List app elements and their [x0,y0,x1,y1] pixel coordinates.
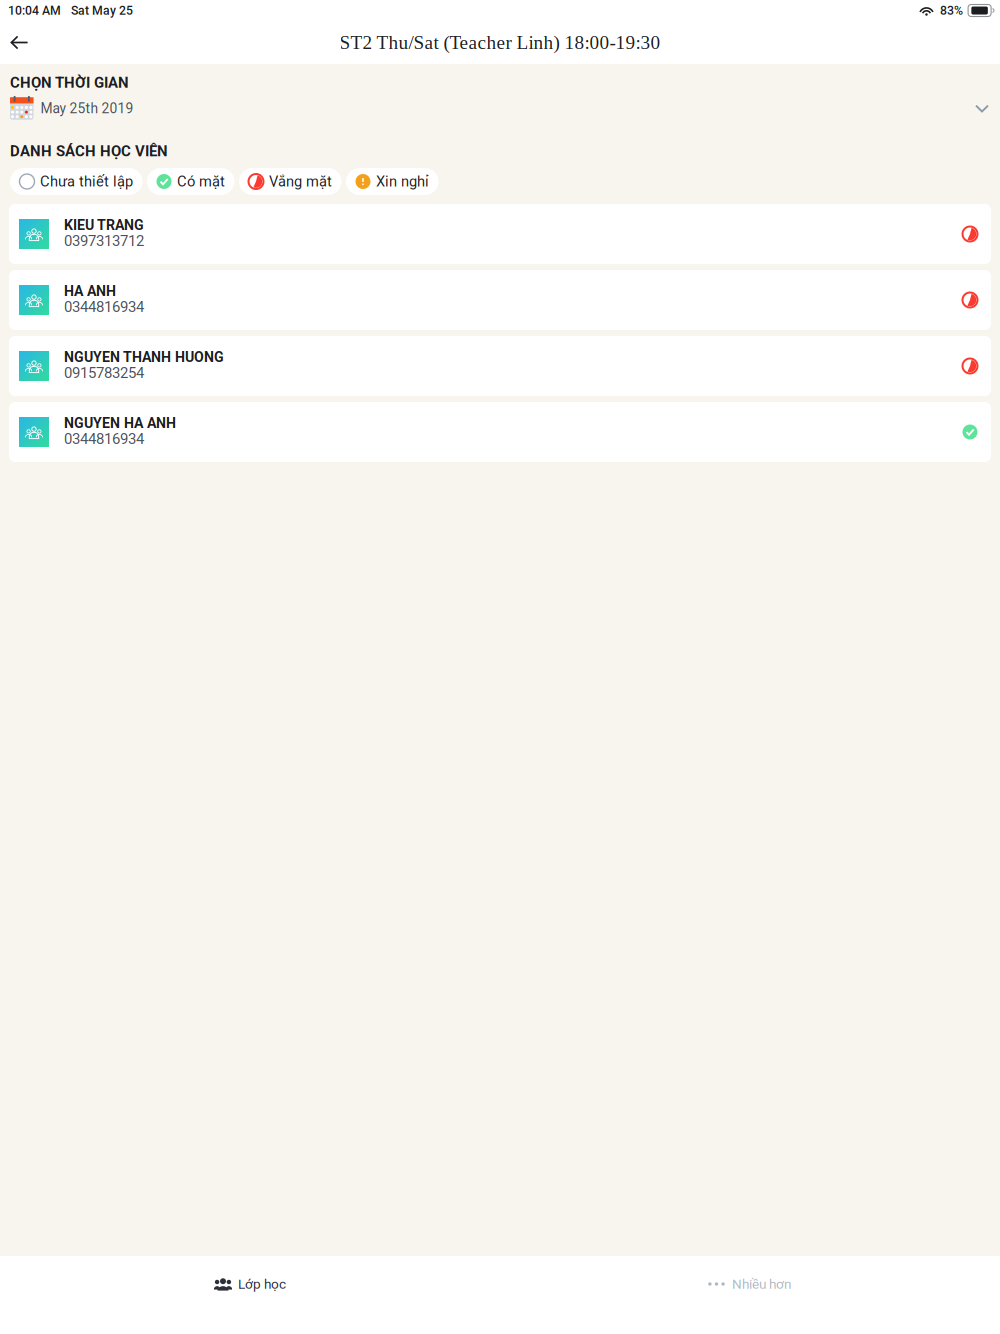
staticText: 10:04 AM [8,3,61,18]
staticText: Lớp học [238,1276,286,1292]
staticText: ST2 Thu/Sat (Teacher Linh) 18:00-19:30 [339,32,660,53]
button[interactable]: Vắng mặt [239,168,341,195]
button[interactable]: Chưa thiết lập [10,168,142,195]
staticText: Chưa thiết lập [40,173,133,190]
button[interactable]: NGUYEN HA ANH [9,402,991,462]
staticText: NGUYEN HA ANH [64,415,176,432]
button[interactable]: HA ANH [9,270,991,330]
staticText: 83% [940,3,963,18]
staticText: 0397313712 [64,232,144,249]
button[interactable]: May 25th 2019 [0,94,1000,122]
staticText: 0344816934 [64,298,144,315]
staticText: KIEU TRANG [64,217,144,234]
staticText: HA ANH [64,283,116,300]
staticText: 0915783254 [64,364,144,381]
staticText: Vắng mặt [269,173,332,190]
staticText: CHỌN THỜI GIAN [10,74,129,91]
button[interactable]: NGUYEN THANH HUONG [9,336,991,396]
button[interactable]: Lớp học [0,1256,500,1312]
staticText: Sat May 25 [71,3,133,18]
staticText: May 25th 2019 [40,100,133,117]
staticText: 0344816934 [64,430,144,447]
button[interactable]: Xin nghỉ [346,168,438,195]
button[interactable]: Có mặt [147,168,234,195]
staticText: Có mặt [177,173,225,190]
staticText: NGUYEN THANH HUONG [64,349,224,366]
button[interactable]: KIEU TRANG [9,204,991,264]
staticText: DANH SÁCH HỌC VIÊN [10,142,168,160]
staticText: Nhiều hơn [732,1276,792,1292]
button[interactable]: Back [0,24,39,60]
button[interactable]: Nhiều hơn [500,1256,1000,1312]
staticText: Xin nghỉ [376,173,429,190]
